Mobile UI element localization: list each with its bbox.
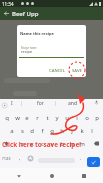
button[interactable]: Home bbox=[39, 168, 65, 183]
staticText: recipe bbox=[21, 49, 33, 54]
button[interactable]: n bbox=[67, 140, 77, 148]
button[interactable]: g bbox=[47, 127, 57, 135]
staticText: b bbox=[60, 140, 64, 148]
button[interactable]: Back bbox=[6, 168, 32, 183]
button[interactable]: j bbox=[67, 127, 77, 135]
staticText: t bbox=[46, 114, 49, 122]
button[interactable]: SAVE bbox=[71, 66, 83, 76]
button[interactable]: z bbox=[17, 140, 27, 148]
button[interactable]: x bbox=[27, 140, 37, 148]
button[interactable]: r bbox=[32, 114, 42, 122]
button[interactable]: a bbox=[7, 127, 17, 135]
staticText: j bbox=[71, 127, 73, 135]
button[interactable]: c bbox=[37, 140, 47, 148]
staticText: . bbox=[80, 155, 82, 162]
button[interactable]: s bbox=[17, 127, 27, 135]
staticText: y bbox=[55, 114, 59, 122]
staticText: f bbox=[41, 127, 44, 135]
button[interactable]: CANCEL bbox=[48, 66, 66, 76]
button[interactable]: p bbox=[92, 114, 102, 122]
staticText: m bbox=[79, 140, 85, 148]
button[interactable]: d bbox=[27, 127, 37, 135]
staticText: s bbox=[21, 127, 24, 135]
button[interactable]: h bbox=[57, 127, 67, 135]
staticText: h bbox=[60, 127, 64, 135]
staticText: g bbox=[50, 127, 54, 135]
staticText: a bbox=[10, 127, 14, 135]
button[interactable]: e bbox=[22, 114, 32, 122]
staticText: o bbox=[85, 114, 89, 122]
staticText: n bbox=[70, 140, 74, 148]
staticText: , bbox=[19, 155, 21, 162]
staticText: CANCEL bbox=[49, 68, 65, 74]
staticText: k bbox=[80, 127, 84, 135]
button[interactable]: w bbox=[12, 114, 22, 122]
staticText: Click here to save recipe! bbox=[2, 140, 82, 149]
button[interactable]: Enter bbox=[87, 157, 100, 167]
staticText: q bbox=[5, 114, 9, 122]
staticText: w bbox=[15, 114, 20, 122]
button[interactable]: k bbox=[77, 127, 87, 135]
button[interactable]: u bbox=[62, 114, 72, 122]
staticText: d bbox=[30, 127, 34, 135]
button[interactable]: Back bbox=[0, 7, 12, 20]
button[interactable]: l bbox=[87, 127, 97, 135]
staticText: p bbox=[95, 114, 99, 122]
button[interactable]: y bbox=[52, 114, 62, 122]
staticText: ?123 bbox=[2, 156, 11, 161]
staticText: r bbox=[36, 114, 39, 122]
button[interactable]: o bbox=[82, 114, 92, 122]
button[interactable]: m bbox=[77, 140, 87, 148]
staticText: for bbox=[37, 100, 44, 107]
staticText: l bbox=[91, 127, 93, 135]
staticText: x bbox=[30, 140, 34, 148]
staticText: I bbox=[11, 100, 13, 107]
staticText: v bbox=[50, 140, 54, 148]
button[interactable]: t bbox=[42, 114, 52, 122]
staticText: c bbox=[41, 140, 44, 148]
staticText: and bbox=[68, 100, 77, 107]
button[interactable]: b bbox=[57, 140, 67, 148]
staticText: e bbox=[25, 114, 29, 122]
staticText: 11:34 bbox=[2, 1, 14, 7]
button[interactable]: q bbox=[2, 114, 12, 122]
staticText: SAVE bbox=[72, 68, 82, 74]
staticText: Recipe name bbox=[21, 46, 37, 50]
staticText: z bbox=[21, 140, 24, 148]
button[interactable]: i bbox=[72, 114, 82, 122]
button[interactable]: f bbox=[37, 127, 47, 135]
button[interactable]: Recents bbox=[71, 168, 97, 183]
staticText: Name this recipe bbox=[20, 31, 54, 36]
button[interactable]: v bbox=[47, 140, 57, 148]
staticText: Beef Upp bbox=[12, 10, 39, 18]
staticText: i bbox=[76, 114, 78, 122]
staticText: u bbox=[65, 114, 69, 122]
